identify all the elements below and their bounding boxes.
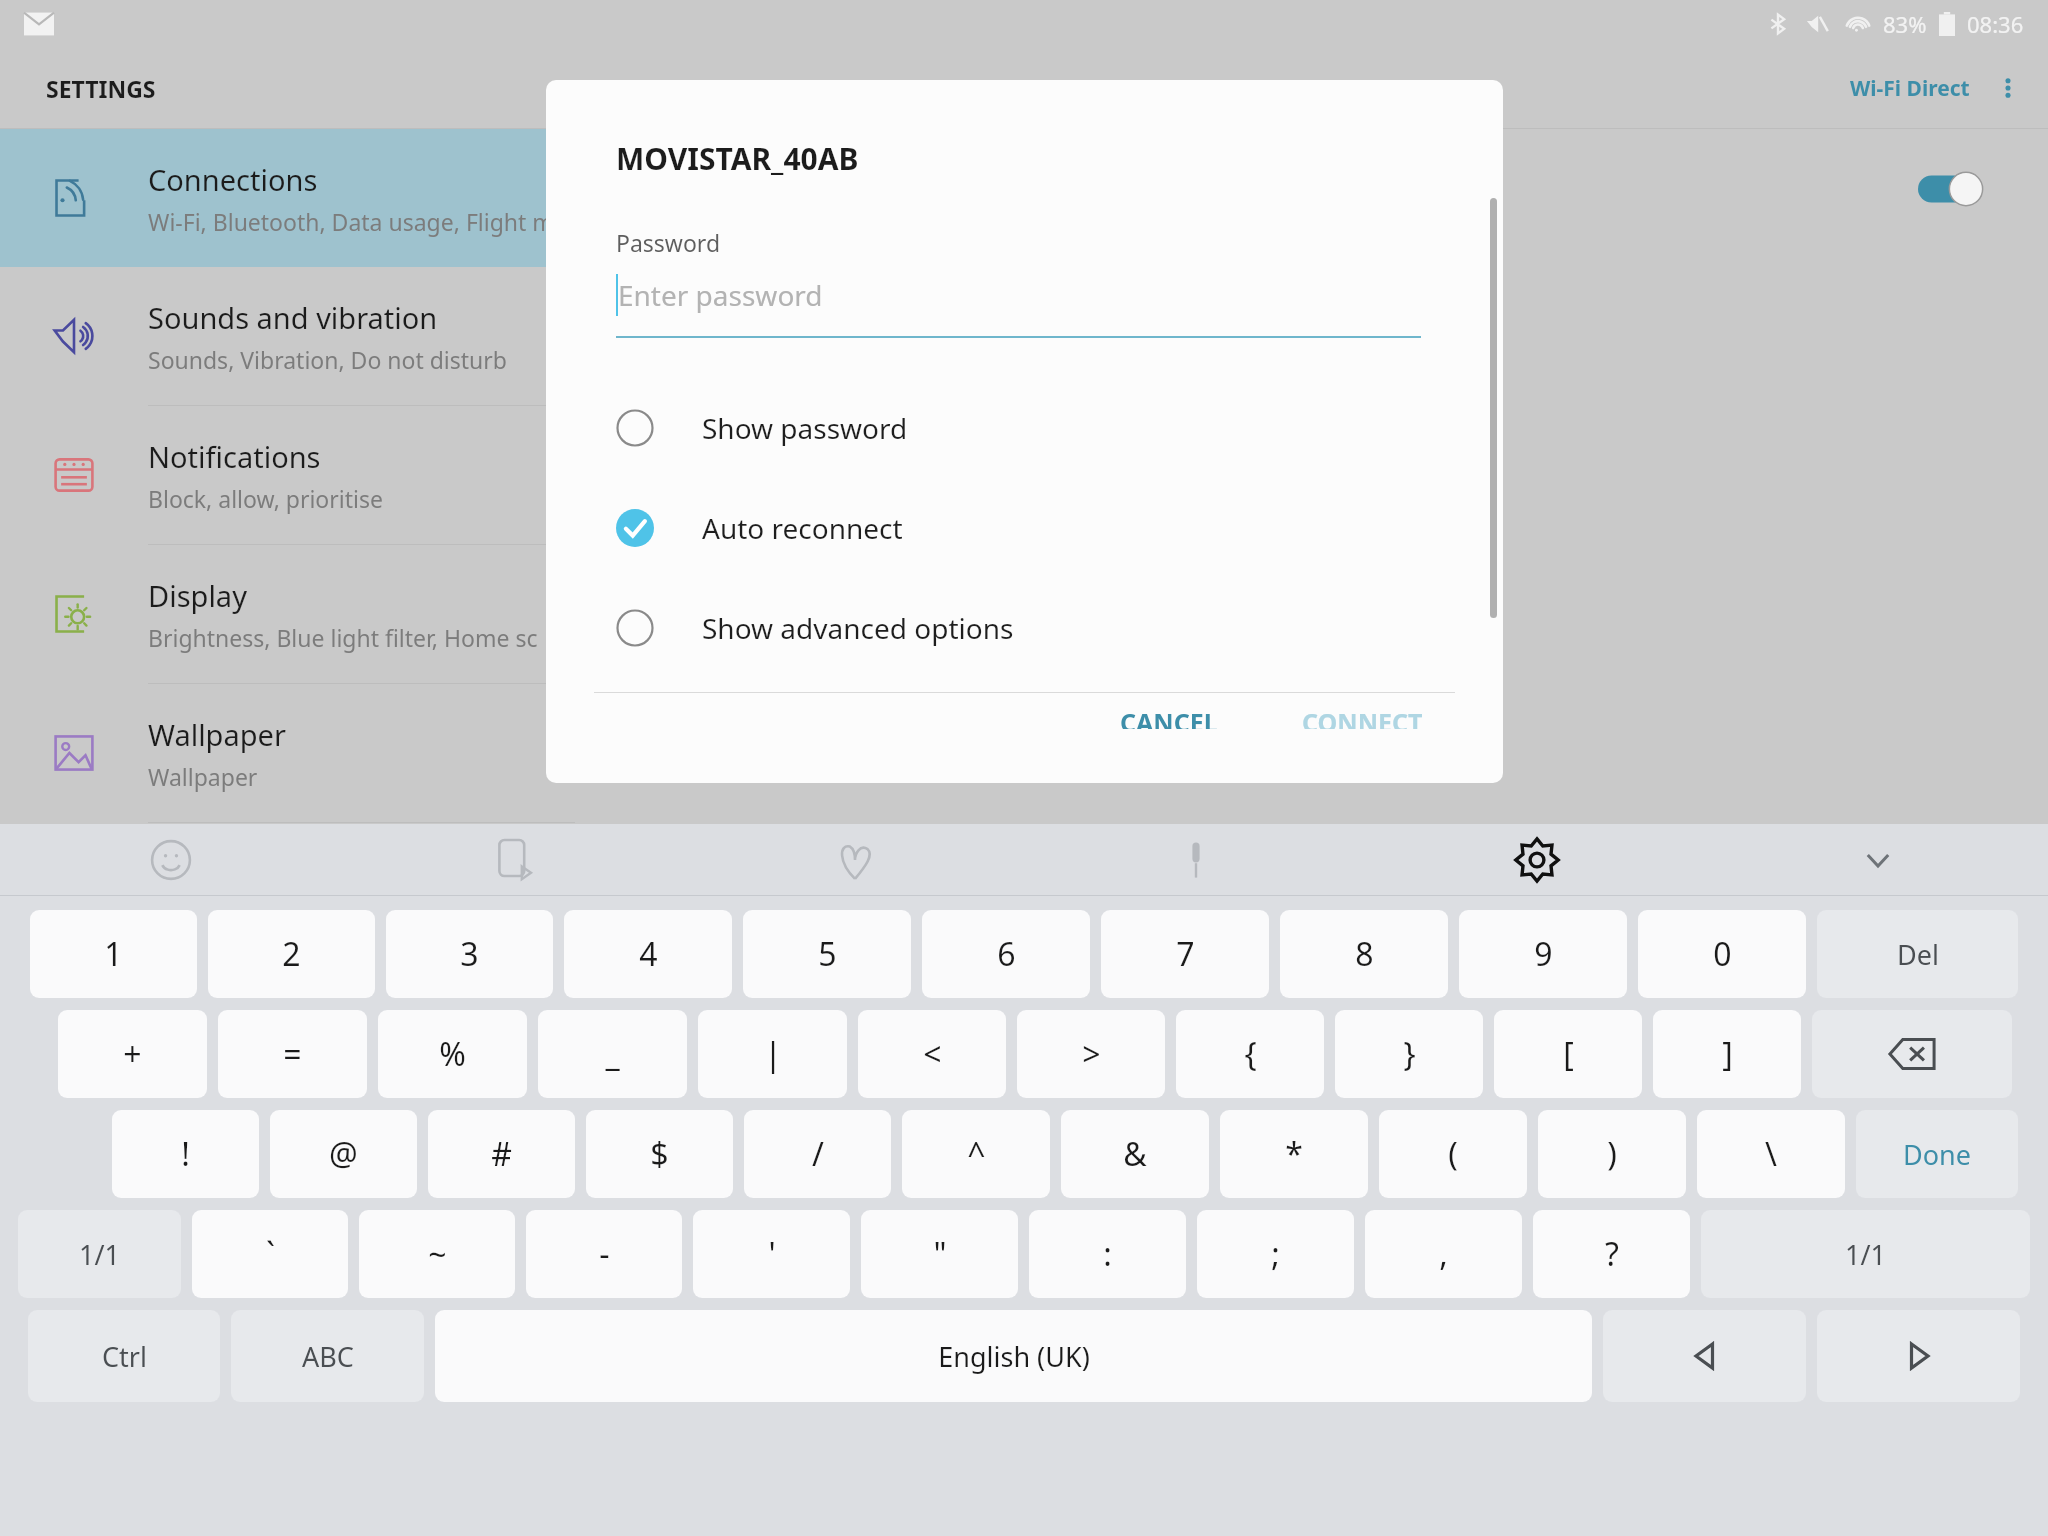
button[interactable]: {: [1176, 1010, 1324, 1098]
button[interactable]: 4: [564, 910, 732, 998]
button[interactable]: <: [858, 1010, 1006, 1098]
button[interactable]: Wallpaper: [0, 684, 575, 822]
button[interactable]: Move left: [1603, 1310, 1806, 1402]
button[interactable]: CANCEL: [1102, 693, 1236, 741]
button[interactable]: 0: [1638, 910, 1806, 998]
button[interactable]: Keyboard settings: [1366, 824, 1707, 896]
button[interactable]: ': [693, 1210, 850, 1298]
button[interactable]: ": [861, 1210, 1018, 1298]
button[interactable]: ^: [902, 1110, 1050, 1198]
button[interactable]: Sounds and vibration: [0, 267, 575, 405]
button[interactable]: Move right: [1817, 1310, 2020, 1402]
button[interactable]: English (UK): [435, 1310, 1592, 1402]
button[interactable]: Del: [1817, 910, 2018, 998]
staticText: MOVISTAR_40AB: [616, 138, 859, 179]
button[interactable]: \: [1697, 1110, 1845, 1198]
button[interactable]: _: [538, 1010, 687, 1098]
button[interactable]: Notifications: [0, 406, 575, 544]
staticText: 6: [997, 932, 1016, 976]
staticText: !: [181, 1132, 190, 1176]
staticText: 4: [639, 932, 658, 976]
staticText: Password: [616, 227, 721, 258]
button[interactable]: %: [378, 1010, 527, 1098]
button[interactable]: &: [1061, 1110, 1209, 1198]
staticText: Done: [1903, 1136, 1971, 1173]
button[interactable]: #: [428, 1110, 575, 1198]
button[interactable]: [575, 139, 2048, 239]
button[interactable]: Show password: [546, 378, 1503, 478]
staticText: |: [764, 1032, 782, 1076]
staticText: 5: [818, 932, 837, 976]
button[interactable]: +: [58, 1010, 207, 1098]
button[interactable]: *: [1220, 1110, 1368, 1198]
button[interactable]: ,: [1365, 1210, 1522, 1298]
button[interactable]: 8: [1280, 910, 1448, 998]
button[interactable]: ?: [1533, 1210, 1690, 1298]
button[interactable]: Display: [0, 545, 575, 683]
staticText: 8: [1355, 932, 1374, 976]
button[interactable]: =: [218, 1010, 367, 1098]
staticText: Connections: [148, 160, 318, 199]
button[interactable]: GIF: [342, 824, 684, 896]
staticText: Wallpaper: [148, 761, 258, 792]
button[interactable]: [: [1494, 1010, 1642, 1098]
button[interactable]: |: [698, 1010, 847, 1098]
staticText: Display: [148, 576, 247, 615]
button[interactable]: Wi-Fi Direct: [1840, 66, 1980, 111]
staticText: Notifications: [148, 437, 321, 476]
staticText: -: [599, 1232, 610, 1276]
staticText: `: [266, 1232, 275, 1276]
button[interactable]: }: [1335, 1010, 1483, 1098]
button[interactable]: Emoji: [0, 824, 342, 896]
button[interactable]: 9: [1459, 910, 1627, 998]
button[interactable]: 5: [743, 910, 911, 998]
staticText: ^: [967, 1132, 986, 1176]
button[interactable]: `: [192, 1210, 348, 1298]
button[interactable]: (: [1379, 1110, 1527, 1198]
button[interactable]: 2: [208, 910, 375, 998]
staticText: 1/1: [1845, 1236, 1886, 1273]
button[interactable]: More options: [1980, 60, 2036, 116]
button[interactable]: Ctrl: [28, 1310, 220, 1402]
staticText: Show password: [702, 409, 908, 447]
button[interactable]: !: [112, 1110, 259, 1198]
staticText: _: [605, 1032, 620, 1076]
button[interactable]: 6: [922, 910, 1090, 998]
staticText: :: [1103, 1232, 1112, 1276]
staticText: 1/1: [79, 1236, 120, 1273]
button[interactable]: 1: [30, 910, 197, 998]
button[interactable]: Done: [1856, 1110, 2018, 1198]
button[interactable]: Backspace: [1812, 1010, 2012, 1098]
staticText: \: [1765, 1132, 1777, 1176]
staticText: /: [812, 1132, 824, 1176]
button[interactable]: $: [586, 1110, 733, 1198]
button[interactable]: @: [270, 1110, 417, 1198]
button[interactable]: ABC: [231, 1310, 424, 1402]
button[interactable]: ]: [1653, 1010, 1801, 1098]
button[interactable]: 3: [386, 910, 553, 998]
button[interactable]: Connections: [0, 129, 575, 267]
button[interactable]: Sticker: [684, 824, 1025, 896]
button[interactable]: Show advanced options: [546, 578, 1503, 678]
button[interactable]: ): [1538, 1110, 1686, 1198]
button[interactable]: >: [1017, 1010, 1165, 1098]
button[interactable]: Hide keyboard: [1707, 824, 2048, 896]
button[interactable]: ~: [359, 1210, 515, 1298]
button[interactable]: :: [1029, 1210, 1186, 1298]
button[interactable]: 1/1: [18, 1210, 181, 1298]
button[interactable]: /: [744, 1110, 891, 1198]
button[interactable]: -: [526, 1210, 682, 1298]
button[interactable]: 7: [1101, 910, 1269, 998]
button[interactable]: ;: [1197, 1210, 1354, 1298]
button[interactable]: Auto reconnect: [546, 478, 1503, 578]
staticText: CONNECT: [1302, 705, 1423, 729]
staticText: Wi-Fi, Bluetooth, Data usage, Flight m: [148, 206, 554, 237]
button[interactable]: CONNECT: [1284, 693, 1441, 741]
button[interactable]: Voice input: [1025, 824, 1366, 896]
button[interactable]: 1/1: [1701, 1210, 2030, 1298]
staticText: ABC: [302, 1338, 354, 1375]
staticText: ?: [1605, 1232, 1619, 1276]
staticText: &: [1123, 1132, 1147, 1176]
